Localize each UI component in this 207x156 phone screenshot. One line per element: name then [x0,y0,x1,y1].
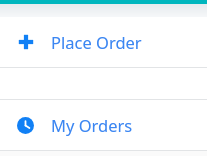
other: Place Order [0,17,51,67]
staticText: Place Order [51,31,142,53]
staticText: My Orders [51,114,133,136]
other: My Orders [0,100,51,150]
button[interactable]: My Orders [0,100,207,150]
button[interactable]: Place Order [0,17,207,67]
